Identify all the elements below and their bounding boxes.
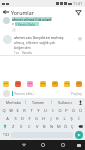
button[interactable]: Kullanıcı <box>52 98 77 106</box>
staticText: A <box>6 116 9 121</box>
staticText: Yorum ekle... <box>14 91 71 96</box>
staticText: Tamam <box>32 100 45 105</box>
button[interactable]: Emoji <box>27 81 33 87</box>
staticText: N <box>50 124 54 129</box>
staticText: U <box>44 108 47 113</box>
button[interactable]: E <box>14 106 21 114</box>
button[interactable]: Merhaba <box>1 98 25 106</box>
button[interactable]: B <box>41 122 48 130</box>
button[interactable]: Ğ <box>70 106 77 114</box>
button[interactable]: Ç <box>69 122 76 130</box>
button[interactable]: Emoji <box>76 81 82 87</box>
staticText: R <box>23 108 26 113</box>
button[interactable]: Emoji <box>52 81 58 87</box>
staticText: 11:41 <box>73 1 83 6</box>
staticText: G <box>35 116 38 121</box>
staticText: Yorumlar <box>11 9 34 16</box>
staticText: Yanıtla <box>22 51 32 55</box>
staticText: X <box>20 124 23 129</box>
staticText: S <box>14 116 17 121</box>
button[interactable]: U <box>42 106 49 114</box>
button[interactable]: M <box>55 122 62 130</box>
button[interactable]: N <box>48 122 55 130</box>
button[interactable]: Voice input <box>77 98 84 106</box>
staticText: O <box>58 108 62 113</box>
button[interactable]: X <box>17 122 25 130</box>
staticText: D <box>21 116 24 121</box>
button[interactable]: Home <box>33 140 53 150</box>
staticText: Ş <box>70 116 73 121</box>
staticText: C <box>28 124 31 129</box>
staticText: 1 Yanıtı Gizle <box>15 22 36 26</box>
button[interactable]: R <box>21 106 28 114</box>
button[interactable]: Y <box>35 106 42 114</box>
button[interactable]: A <box>3 114 11 122</box>
staticText: ?123 <box>3 133 10 137</box>
staticText: ahmet.can Gerçekten muhteş <box>14 35 64 40</box>
button[interactable]: ?123 <box>2 131 10 139</box>
staticText: beğendim <box>14 45 31 50</box>
staticText: Kullanıcı <box>58 100 72 105</box>
staticText: Paylaş <box>71 91 82 96</box>
staticText: W <box>9 108 13 113</box>
staticText: K <box>56 116 59 121</box>
staticText: Merhaba <box>6 100 21 105</box>
button[interactable]: W <box>7 106 14 114</box>
button[interactable]: Ş <box>68 114 75 122</box>
staticText: olmuş, ellerine sağlık çok <box>14 40 56 45</box>
staticText: Y <box>37 108 40 113</box>
button[interactable]: K <box>54 114 61 122</box>
button[interactable]: Emoji <box>3 81 9 87</box>
button[interactable]: Paylaş <box>71 91 82 96</box>
button[interactable]: F <box>26 114 33 122</box>
button[interactable]: Backspace <box>76 122 85 130</box>
button[interactable]: O <box>56 106 63 114</box>
button[interactable]: Shift <box>0 122 9 130</box>
staticText: I <box>52 108 54 113</box>
button[interactable]: J <box>47 114 54 122</box>
button[interactable]: Switch keyboard <box>73 140 85 150</box>
button[interactable]: Back <box>2 8 10 16</box>
button[interactable]: H <box>40 114 47 122</box>
button[interactable]: L <box>61 114 68 122</box>
staticText: Ü <box>79 108 82 113</box>
button[interactable]: Like <box>78 37 82 41</box>
button[interactable]: I <box>49 106 56 114</box>
button[interactable]: Emoji <box>40 81 46 87</box>
button[interactable]: İ <box>75 114 82 122</box>
staticText: V <box>36 124 39 129</box>
staticText: M <box>57 124 61 129</box>
staticText: B <box>43 124 46 129</box>
staticText: Ö <box>64 124 68 129</box>
button[interactable]: Filter <box>75 9 82 16</box>
button[interactable]: G <box>33 114 40 122</box>
button[interactable]: V <box>33 122 41 130</box>
staticText: Ç <box>71 124 74 129</box>
staticText: H <box>42 116 45 121</box>
staticText: Q <box>2 108 6 113</box>
button[interactable]: Yanıtla <box>22 51 32 55</box>
button[interactable]: P <box>63 106 70 114</box>
staticText: 1sa <box>14 51 19 55</box>
button[interactable]: C <box>25 122 33 130</box>
button[interactable]: ahmet.can Gerçekten muhteş <box>3 35 82 55</box>
button[interactable]: T <box>28 106 35 114</box>
staticText: L <box>63 116 66 121</box>
button[interactable]: Tamam <box>26 98 51 106</box>
button[interactable]: Ü <box>77 106 84 114</box>
button[interactable]: Ö <box>62 122 69 130</box>
button[interactable]: Z <box>9 122 17 130</box>
button[interactable]: Emoji <box>15 81 21 87</box>
staticText: ahmet.yilmaz Çok güzel olmuş <box>12 17 52 21</box>
button[interactable]: Q <box>1 106 7 114</box>
staticText: F <box>28 116 31 121</box>
button[interactable]: S <box>11 114 19 122</box>
button[interactable]: Back <box>14 140 33 150</box>
button[interactable]: Emoji <box>64 81 70 87</box>
button[interactable]: D <box>19 114 26 122</box>
button[interactable]: Recents <box>53 140 73 150</box>
button[interactable]: Send <box>75 131 83 139</box>
staticText: J <box>50 116 52 121</box>
